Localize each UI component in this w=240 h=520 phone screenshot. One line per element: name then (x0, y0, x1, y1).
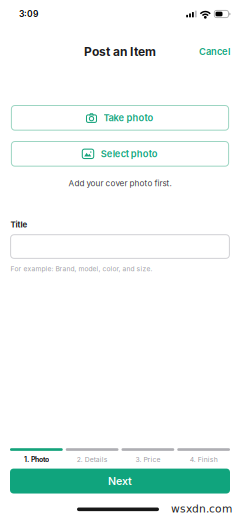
staticText: Post an Item (84, 44, 156, 59)
staticText: 4. Finish (190, 455, 218, 464)
button[interactable]: Select photo (11, 141, 229, 166)
staticText: 3. Price (135, 455, 160, 464)
staticText: For example: Brand, model, color, and si… (11, 265, 153, 273)
staticText: Next (108, 475, 132, 487)
staticText: Cancel (199, 46, 230, 57)
staticText: wsxdn.com (171, 503, 232, 515)
staticText: 2. Details (77, 455, 108, 464)
button[interactable]: Take photo (11, 105, 229, 130)
staticText: Title (11, 220, 28, 229)
staticText: 3:09 (19, 9, 38, 19)
staticText: Select photo (101, 148, 158, 159)
button[interactable]: Next (10, 469, 230, 493)
staticText: 1. Photo (24, 455, 49, 464)
staticText: Add your cover photo first. (68, 178, 171, 188)
staticText: Take photo (104, 112, 154, 123)
button[interactable]: Cancel (189, 40, 240, 64)
